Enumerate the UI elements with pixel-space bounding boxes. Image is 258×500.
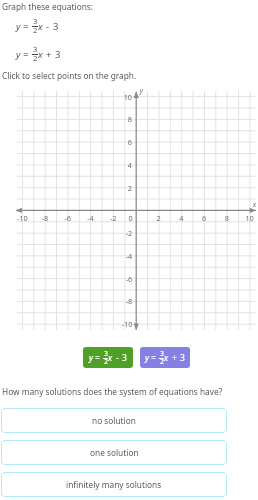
staticText: Click to select points on the graph. bbox=[2, 70, 137, 81]
button[interactable]: no solution bbox=[1, 408, 227, 433]
staticText: - bbox=[116, 352, 119, 364]
staticText: infinitely many solutions bbox=[66, 479, 162, 490]
staticText: 2 bbox=[104, 357, 108, 366]
staticText: = bbox=[23, 48, 29, 61]
staticText: 3 bbox=[55, 48, 61, 61]
staticText: 2 bbox=[33, 25, 38, 35]
staticText: 3 bbox=[104, 349, 108, 358]
staticText: one solution bbox=[90, 447, 139, 458]
staticText: How many solutions does the system of eq… bbox=[2, 386, 223, 397]
staticText: x bbox=[38, 20, 43, 33]
button[interactable]: y bbox=[140, 347, 190, 368]
staticText: 3 bbox=[33, 44, 38, 54]
button[interactable]: y bbox=[83, 347, 133, 368]
staticText: = bbox=[151, 352, 156, 364]
staticText: 2 bbox=[33, 53, 38, 63]
staticText: no solution bbox=[92, 415, 136, 426]
staticText: + bbox=[172, 352, 177, 364]
staticText: 3 bbox=[180, 352, 185, 364]
staticText: = bbox=[23, 20, 29, 33]
staticText: 3 bbox=[53, 20, 59, 33]
staticText: y bbox=[145, 352, 149, 364]
staticText: y bbox=[89, 352, 93, 364]
staticText: y bbox=[16, 20, 21, 33]
staticText: 3 bbox=[160, 349, 164, 358]
button[interactable]: infinitely many solutions bbox=[1, 472, 227, 497]
staticText: - bbox=[46, 20, 50, 33]
staticText: x bbox=[164, 352, 169, 364]
staticText: y bbox=[16, 48, 21, 61]
staticText: = bbox=[95, 352, 100, 364]
staticText: 3 bbox=[122, 352, 127, 364]
staticText: + bbox=[46, 48, 52, 61]
staticText: 3 bbox=[33, 16, 38, 26]
button[interactable]: one solution bbox=[1, 440, 227, 465]
staticText: x bbox=[108, 352, 113, 364]
staticText: Graph these equations: bbox=[2, 1, 94, 12]
staticText: 2 bbox=[160, 357, 164, 366]
staticText: x bbox=[38, 48, 43, 61]
other: Coordinate plane graph bbox=[0, 0, 258, 500]
